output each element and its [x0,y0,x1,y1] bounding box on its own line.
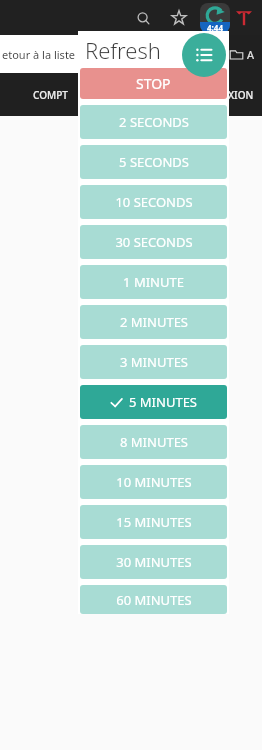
staticText: 30 MINUTES [116,553,192,571]
staticText: Refresh [85,35,161,65]
button[interactable]: 2 SECONDS [80,105,227,139]
staticText: etour à la liste [2,47,76,62]
button[interactable]: Refresh timer [200,3,230,33]
staticText: 4:44 [207,22,223,33]
button[interactable]: Bookmark [166,5,192,31]
staticText: 60 MINUTES [116,591,192,609]
button[interactable]: 8 MINUTES [80,425,227,459]
staticText: 10 MINUTES [116,473,192,491]
staticText: 5 SECONDS [119,153,189,171]
button[interactable]: 10 SECONDS [80,185,227,219]
staticText: STOP [136,74,171,93]
staticText: XION [228,88,254,102]
button[interactable]: Open list [182,33,226,77]
staticText: 3 MINUTES [120,353,188,371]
button[interactable]: 5 MINUTES [80,385,227,419]
button[interactable]: 1 MINUTE [80,265,227,299]
button[interactable]: 15 MINUTES [80,505,227,539]
staticText: COMPT [33,88,68,102]
button[interactable]: 30 SECONDS [80,225,227,259]
button[interactable]: 5 SECONDS [80,145,227,179]
button[interactable]: 60 MINUTES [80,585,227,614]
button[interactable]: 3 MINUTES [80,345,227,379]
button[interactable]: STOP [80,68,227,99]
staticText: 15 MINUTES [116,513,192,531]
staticText: 2 MINUTES [120,313,188,331]
staticText: 8 MINUTES [120,433,188,451]
staticText: 2 SECONDS [119,113,189,131]
button[interactable]: 10 MINUTES [80,465,227,499]
button[interactable]: Search [130,5,156,31]
button[interactable]: 30 MINUTES [80,545,227,579]
staticText: 10 SECONDS [115,193,193,211]
button[interactable]: 2 MINUTES [80,305,227,339]
staticText: 30 SECONDS [115,233,193,251]
staticText: 5 MINUTES [129,393,197,411]
staticText: 1 MINUTE [123,273,184,291]
staticText: A [247,47,255,62]
